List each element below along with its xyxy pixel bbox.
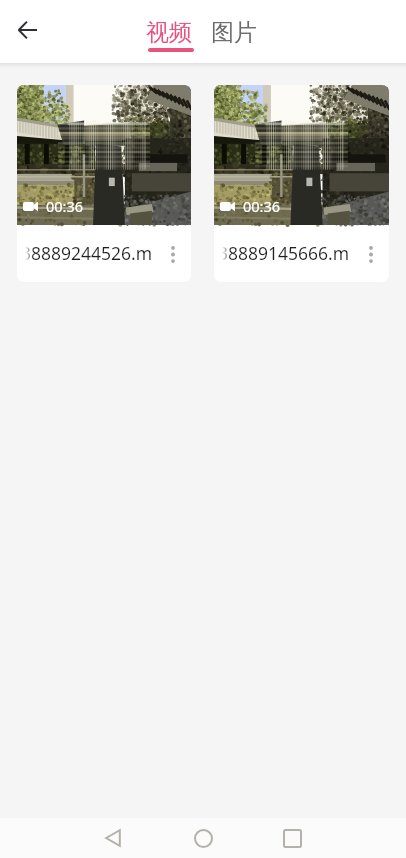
staticText: 图片 [211,18,257,47]
button[interactable]: 00:36 [214,85,389,282]
button[interactable]: More options [353,226,389,282]
button[interactable]: Back [93,818,133,858]
button[interactable]: 00:36 [17,85,191,282]
staticText: 00:36 [46,196,84,216]
staticText: 视频 [146,18,192,47]
button[interactable]: Recents [272,818,312,858]
staticText: 00:36 [243,196,281,216]
button[interactable]: Home [183,818,223,858]
button[interactable]: Back [9,12,45,48]
button[interactable]: More options [155,226,191,282]
staticText: 38889145666.mp4 [222,241,349,265]
button[interactable]: 视频 [140,8,200,56]
button[interactable]: 图片 [205,8,265,56]
staticText: 38889244526.mp4 [25,241,151,265]
